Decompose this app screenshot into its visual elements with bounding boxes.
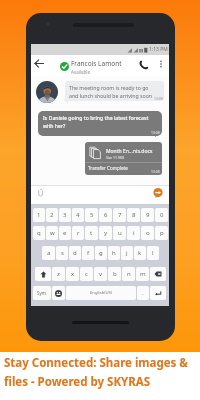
button[interactable]: English(US) [66,286,136,300]
button[interactable]: a [42,246,55,260]
staticText: 9 [146,211,150,219]
staticText: 13:08 [151,169,160,174]
button[interactable]: Month En...nts.docx [85,142,162,175]
button[interactable]: m [136,267,149,281]
button[interactable]: s [56,246,68,260]
button[interactable]: Enter [150,286,166,300]
button[interactable]: k [134,246,146,260]
button[interactable]: 0 [155,208,168,222]
staticText: 8 [132,211,136,219]
staticText: p [160,229,164,237]
staticText: j [126,249,128,257]
staticText: b [113,270,117,278]
staticText: v [99,270,103,278]
button[interactable]: 8 [127,208,140,222]
staticText: with her? [43,122,66,129]
staticText: 4 [76,211,80,219]
staticText: f [87,249,90,257]
button[interactable]: 9 [141,208,154,222]
staticText: k [138,249,142,257]
button[interactable]: b [108,267,121,281]
button[interactable]: c [80,267,93,281]
staticText: 5 [90,211,94,219]
button[interactable]: d [69,246,81,260]
staticText: The meeting room is ready to go [69,84,149,91]
staticText: g [99,249,103,257]
staticText: m [140,270,146,278]
staticText: Available [71,69,90,75]
staticText: 6 [104,211,108,219]
button[interactable]: g [95,246,107,260]
staticText: x [71,270,75,278]
staticText: Francois Lamont [71,59,122,68]
button[interactable]: Backspace [150,267,166,281]
staticText: e [63,229,67,237]
button[interactable]: l [147,246,159,260]
staticText: Size 11.9KB [106,155,125,160]
button[interactable]: t [85,226,98,240]
staticText: n [127,270,131,278]
staticText: c [85,270,88,278]
staticText: Transfer Complete [88,165,128,171]
button[interactable]: q [33,226,45,240]
staticText: y [104,229,108,237]
button[interactable]: n [122,267,135,281]
button[interactable]: Sym [33,286,51,300]
staticText: t [90,229,93,237]
staticText: w [50,229,55,237]
staticText: Month En...nts.docx [106,148,153,155]
staticText: r [77,229,80,237]
staticText: i [133,229,135,237]
staticText: a [47,249,51,257]
button[interactable]: j [121,246,133,260]
staticText: o [146,229,150,237]
button[interactable]: x [66,267,79,281]
button[interactable]: 5 [85,208,98,222]
button[interactable]: h [108,246,120,260]
staticText: English(US) [90,290,113,296]
staticText: z [57,270,60,278]
button[interactable]: Call [139,60,149,70]
button[interactable]: p [155,226,168,240]
button[interactable]: i [127,226,140,240]
button[interactable]: 4 [72,208,84,222]
button[interactable]: e [59,226,71,240]
button[interactable]: v [94,267,107,281]
staticText: h [112,249,116,257]
button[interactable]: w [46,226,58,240]
button[interactable]: o [141,226,154,240]
button[interactable]: Shift [35,267,51,281]
staticText: s [61,249,64,257]
staticText: files - Powered by SKYRAS [4,374,151,390]
staticText: 0 [160,211,164,219]
button[interactable]: z [52,267,65,281]
staticText: q [37,229,41,237]
staticText: l [152,249,154,257]
button[interactable]: y [99,226,112,240]
button[interactable]: Back [33,57,46,70]
staticText: d [73,249,77,257]
staticText: Sym [37,290,47,296]
button[interactable]: 3 [59,208,71,222]
button[interactable]: Emoji [52,286,65,300]
button[interactable]: f [82,246,94,260]
button[interactable]: u [113,226,126,240]
button[interactable]: Attach file [36,188,45,197]
staticText: u [118,229,122,237]
staticText: 2 [50,211,54,219]
staticText: Is Daniele going to bring the latest for… [43,114,149,121]
staticText: 7 [118,211,122,219]
button[interactable]: 7 [113,208,126,222]
staticText: 3 [63,211,67,219]
staticText: 13:08 [154,96,163,101]
button[interactable]: More options [156,59,166,69]
button[interactable]: Send message [153,188,163,198]
staticText: 1:13 PM [149,46,168,53]
button[interactable]: 1 [33,208,45,222]
button[interactable]: . [137,286,149,300]
button[interactable]: 2 [46,208,58,222]
button[interactable]: 6 [99,208,112,222]
staticText: . [142,289,144,297]
staticText: Stay Connected: Share images & [4,355,188,371]
button[interactable]: r [72,226,84,240]
